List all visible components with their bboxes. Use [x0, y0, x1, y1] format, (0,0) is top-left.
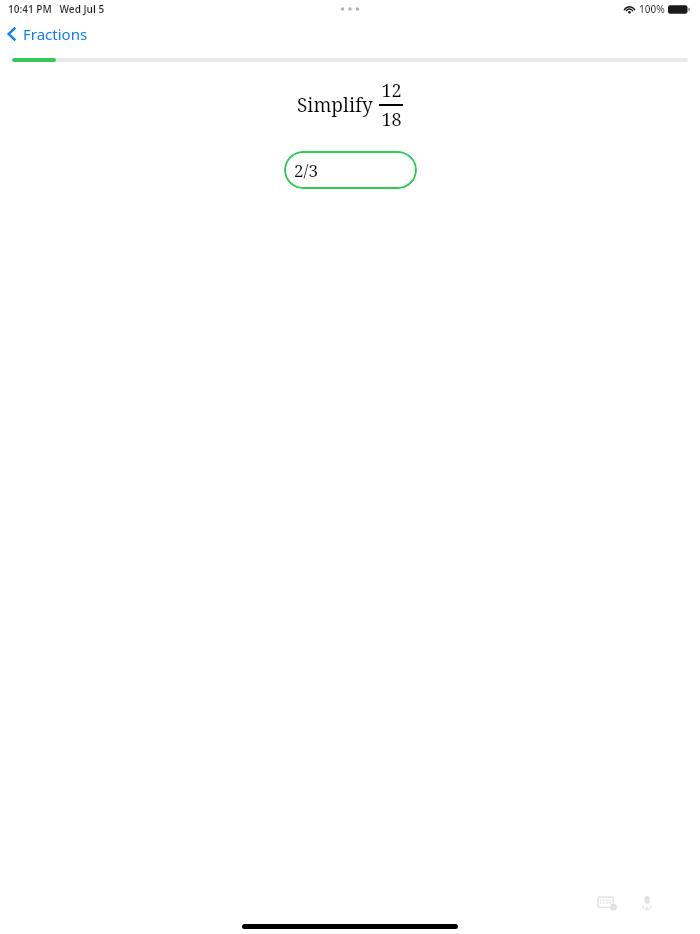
- other: Back: [6, 25, 18, 43]
- staticText: 12: [381, 78, 402, 103]
- staticText: 2/3: [294, 159, 318, 182]
- staticText: 10:41 PM Wed Jul 5: [8, 2, 105, 16]
- staticText: Fractions: [23, 24, 88, 44]
- staticText: Simplify: [297, 92, 373, 118]
- button[interactable]: Back: [0, 22, 98, 46]
- staticText: 100%: [639, 2, 665, 16]
- button[interactable]: 2/3: [284, 151, 417, 189]
- staticText: 18: [381, 107, 402, 132]
- button[interactable]: Keyboard: [594, 890, 620, 916]
- button[interactable]: Dictation: [634, 890, 660, 916]
